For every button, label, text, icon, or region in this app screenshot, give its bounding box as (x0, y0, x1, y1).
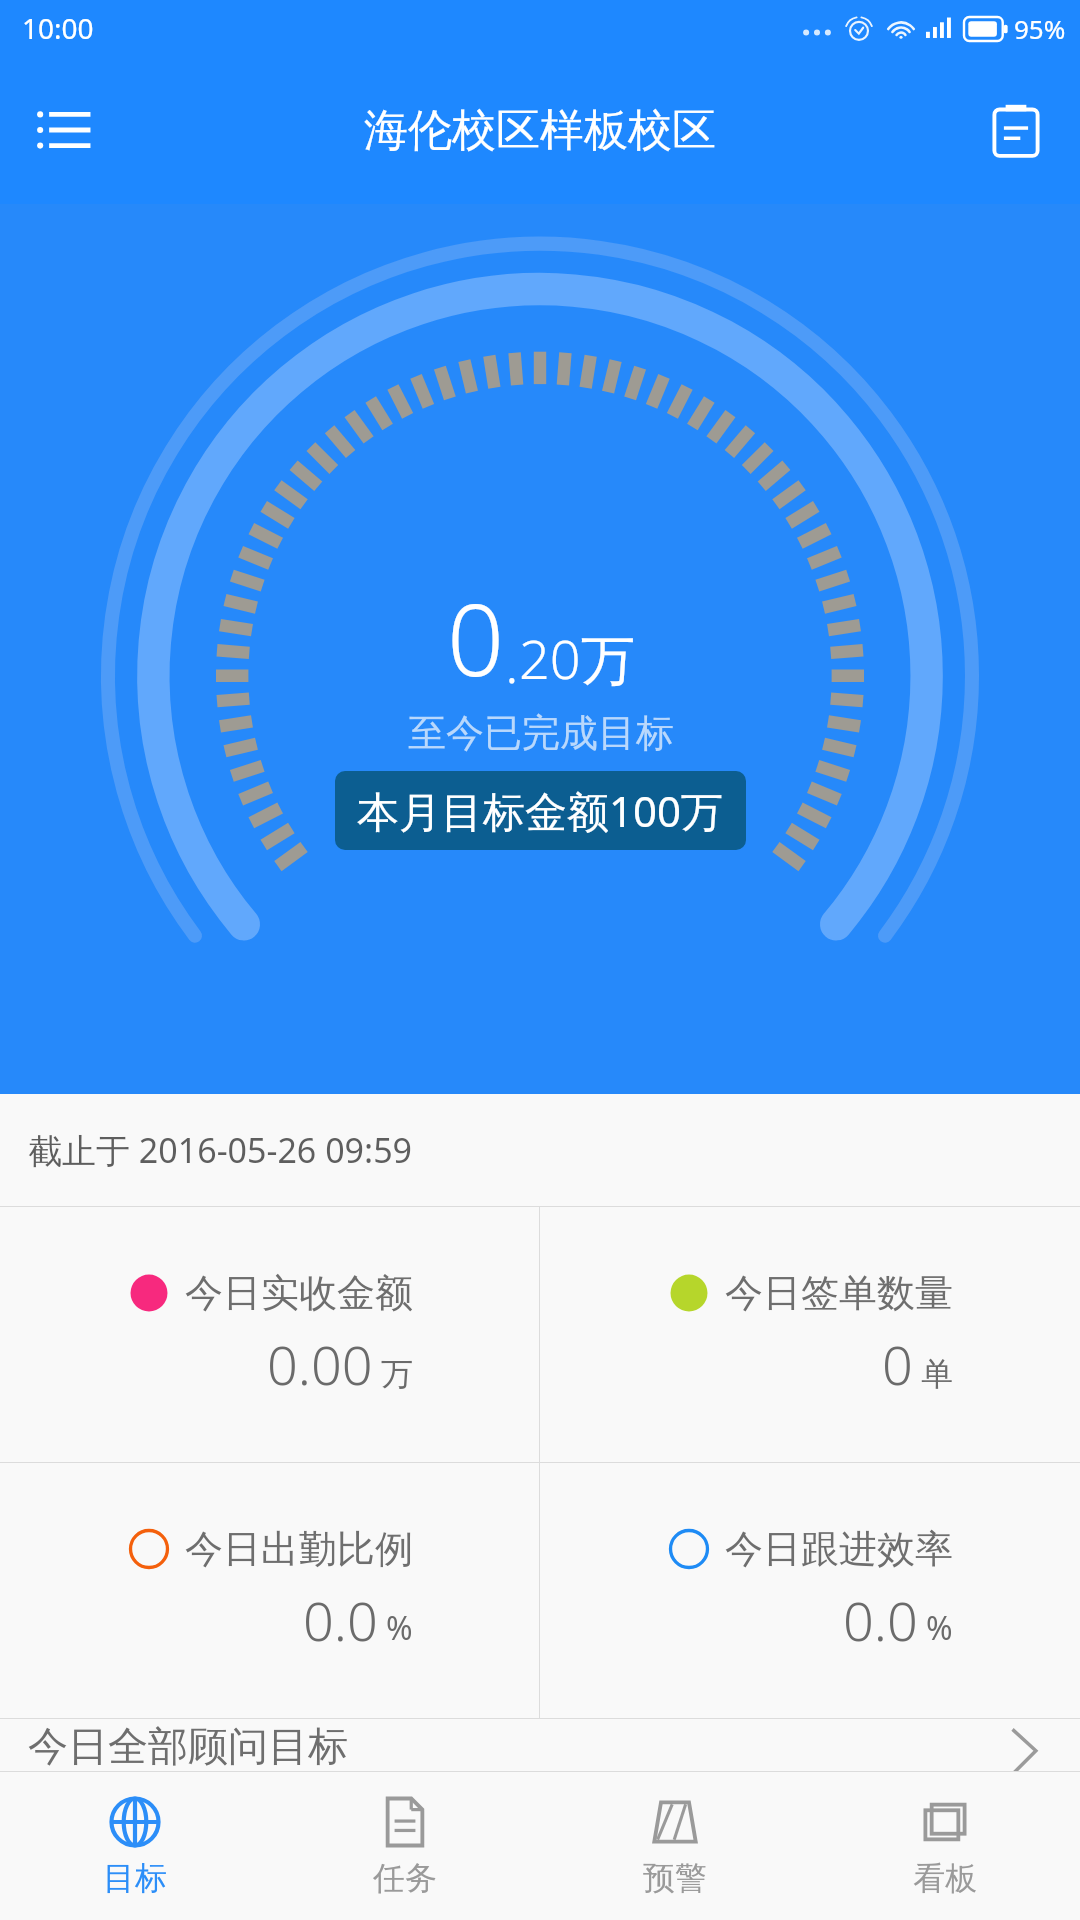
staticText: 0.00 (267, 1327, 373, 1401)
button[interactable]: Menu (26, 94, 98, 166)
button[interactable]: 本月目标金额100万 (335, 771, 746, 850)
staticText: 至今已完成目标 (408, 709, 674, 757)
staticText: % (386, 1606, 413, 1650)
staticText: 本月目标金额100万 (357, 782, 724, 839)
staticText: 95% (1014, 11, 1066, 46)
staticText: 今日出勤比例 (185, 1525, 413, 1573)
staticText: % (926, 1606, 953, 1650)
staticText: 单 (921, 1354, 953, 1394)
button[interactable]: 目标 (0, 1772, 270, 1920)
staticText: 万 (381, 1354, 413, 1394)
staticText: 0 (882, 1327, 913, 1401)
staticText: 20万 (519, 621, 635, 695)
button[interactable]: 今日实收金额 (0, 1207, 539, 1462)
button[interactable]: 今日跟进效率 (540, 1463, 1080, 1718)
staticText: 任务 (373, 1858, 437, 1898)
staticText: 0.0 (843, 1583, 918, 1657)
button[interactable]: 今日出勤比例 (0, 1463, 539, 1718)
button[interactable]: Reports (978, 92, 1054, 168)
button[interactable]: 今日全部顾问目标 (0, 1719, 1080, 1771)
staticText: 目标 (103, 1858, 167, 1898)
staticText: 今日全部顾问目标 (28, 1721, 348, 1771)
button[interactable]: 今日签单数量 (540, 1207, 1080, 1462)
staticText: 0.0 (303, 1583, 378, 1657)
staticText: 今日实收金额 (185, 1269, 413, 1317)
staticText: 10:00 (22, 9, 94, 47)
staticText: 海伦校区样板校区 (364, 103, 716, 158)
staticText: 截止于 2016-05-26 09:59 (28, 1127, 413, 1173)
staticText: 预警 (643, 1858, 707, 1898)
staticText: 今日跟进效率 (725, 1525, 953, 1573)
staticText: 0 (447, 569, 505, 705)
staticText: . (505, 623, 519, 699)
button[interactable]: 看板 (810, 1772, 1080, 1920)
staticText: 今日签单数量 (725, 1269, 953, 1317)
button[interactable]: 任务 (270, 1772, 540, 1920)
staticText: 看板 (913, 1858, 977, 1898)
button[interactable]: 预警 (540, 1772, 810, 1920)
